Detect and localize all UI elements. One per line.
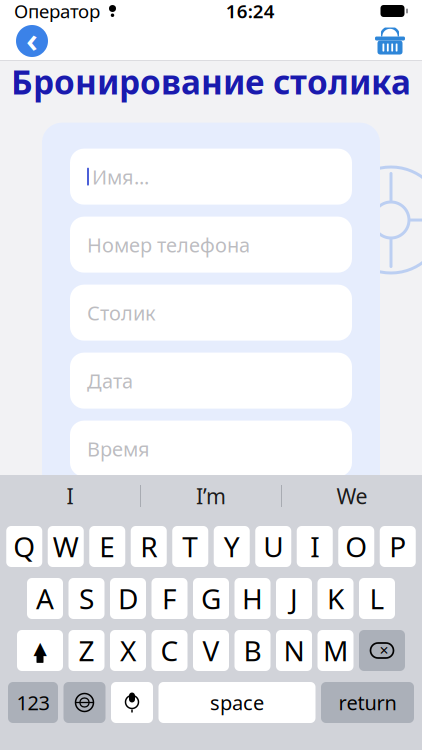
staticText: Столик <box>87 299 156 326</box>
button[interactable]: J <box>276 578 312 619</box>
button[interactable]: return <box>321 682 414 723</box>
staticText: space <box>210 689 264 716</box>
button[interactable]: X <box>110 630 146 671</box>
staticText: return <box>338 689 396 716</box>
button[interactable]: Q <box>6 526 42 567</box>
staticText: W <box>53 528 79 565</box>
button[interactable]: Dictate <box>111 682 153 723</box>
button[interactable]: K <box>317 578 353 619</box>
button[interactable]: Cart <box>366 22 414 60</box>
button[interactable]: Delete <box>359 630 405 671</box>
button[interactable]: V <box>193 630 229 671</box>
staticText: H <box>242 580 263 617</box>
button[interactable]: Y <box>214 526 250 567</box>
button[interactable]: G <box>193 578 229 619</box>
staticText: Оператор <box>14 0 100 23</box>
button[interactable]: Numbers <box>8 682 58 723</box>
staticText: Бронирование столика <box>11 59 411 104</box>
button[interactable]: N <box>276 630 312 671</box>
button[interactable]: Shift <box>17 630 63 671</box>
button[interactable]: Номер телефона <box>70 217 352 273</box>
staticText: L <box>369 580 384 617</box>
staticText: E <box>99 528 115 565</box>
staticText: Время <box>87 435 150 462</box>
staticText: I <box>66 482 73 510</box>
staticText: Q <box>13 528 35 565</box>
staticText: J <box>290 580 298 617</box>
staticText: U <box>263 528 283 565</box>
staticText: ‹ <box>26 16 38 62</box>
staticText: C <box>160 632 178 669</box>
staticText: Имя... <box>92 163 149 190</box>
button[interactable]: B <box>234 630 270 671</box>
staticText: P <box>389 528 406 565</box>
staticText: R <box>140 528 157 565</box>
staticText: T <box>182 528 198 565</box>
button[interactable]: Имя... <box>70 149 352 205</box>
button[interactable]: H <box>234 578 270 619</box>
button[interactable]: R <box>131 526 167 567</box>
staticText: 123 <box>16 689 49 716</box>
button[interactable]: T <box>172 526 208 567</box>
button[interactable]: I <box>0 475 140 517</box>
staticText: X <box>120 632 136 669</box>
staticText: G <box>201 580 221 617</box>
staticText: Z <box>78 632 94 669</box>
staticText: ▲ <box>33 638 46 658</box>
button[interactable]: I <box>297 526 333 567</box>
button[interactable]: Back <box>8 22 56 60</box>
staticText: K <box>327 580 344 617</box>
staticText: B <box>243 632 261 669</box>
staticText: A <box>36 580 54 617</box>
button[interactable]: F <box>151 578 187 619</box>
staticText: I <box>310 528 319 565</box>
button[interactable]: D <box>110 578 146 619</box>
button[interactable]: S <box>68 578 104 619</box>
button[interactable]: We <box>282 475 422 517</box>
button[interactable]: Время <box>70 421 352 477</box>
button[interactable]: M <box>317 630 353 671</box>
button[interactable]: E <box>89 526 125 567</box>
staticText: ✕ <box>379 644 389 657</box>
button[interactable]: U <box>255 526 291 567</box>
staticText: Дата <box>87 367 133 394</box>
button[interactable]: P <box>380 526 416 567</box>
button[interactable]: L <box>359 578 395 619</box>
button[interactable]: space <box>158 682 315 723</box>
button[interactable]: Дата <box>70 353 352 409</box>
button[interactable]: O <box>338 526 374 567</box>
button[interactable]: Switch keyboard <box>63 682 105 723</box>
staticText: S <box>79 580 94 617</box>
button[interactable]: W <box>48 526 84 567</box>
staticText: Номер телефона <box>87 231 250 258</box>
staticText: V <box>202 632 219 669</box>
button[interactable]: Столик <box>70 285 352 341</box>
staticText: M <box>323 632 348 669</box>
button[interactable]: I’m <box>141 475 281 517</box>
staticText: Y <box>224 528 240 565</box>
staticText: N <box>283 632 304 669</box>
staticText: We <box>336 482 367 510</box>
staticText: D <box>118 580 138 617</box>
button[interactable]: C <box>151 630 187 671</box>
button[interactable]: Z <box>68 630 104 671</box>
staticText: O <box>345 528 367 565</box>
staticText: 16:24 <box>226 0 275 23</box>
staticText: F <box>162 580 177 617</box>
staticText: I’m <box>196 482 226 510</box>
button[interactable]: A <box>27 578 63 619</box>
